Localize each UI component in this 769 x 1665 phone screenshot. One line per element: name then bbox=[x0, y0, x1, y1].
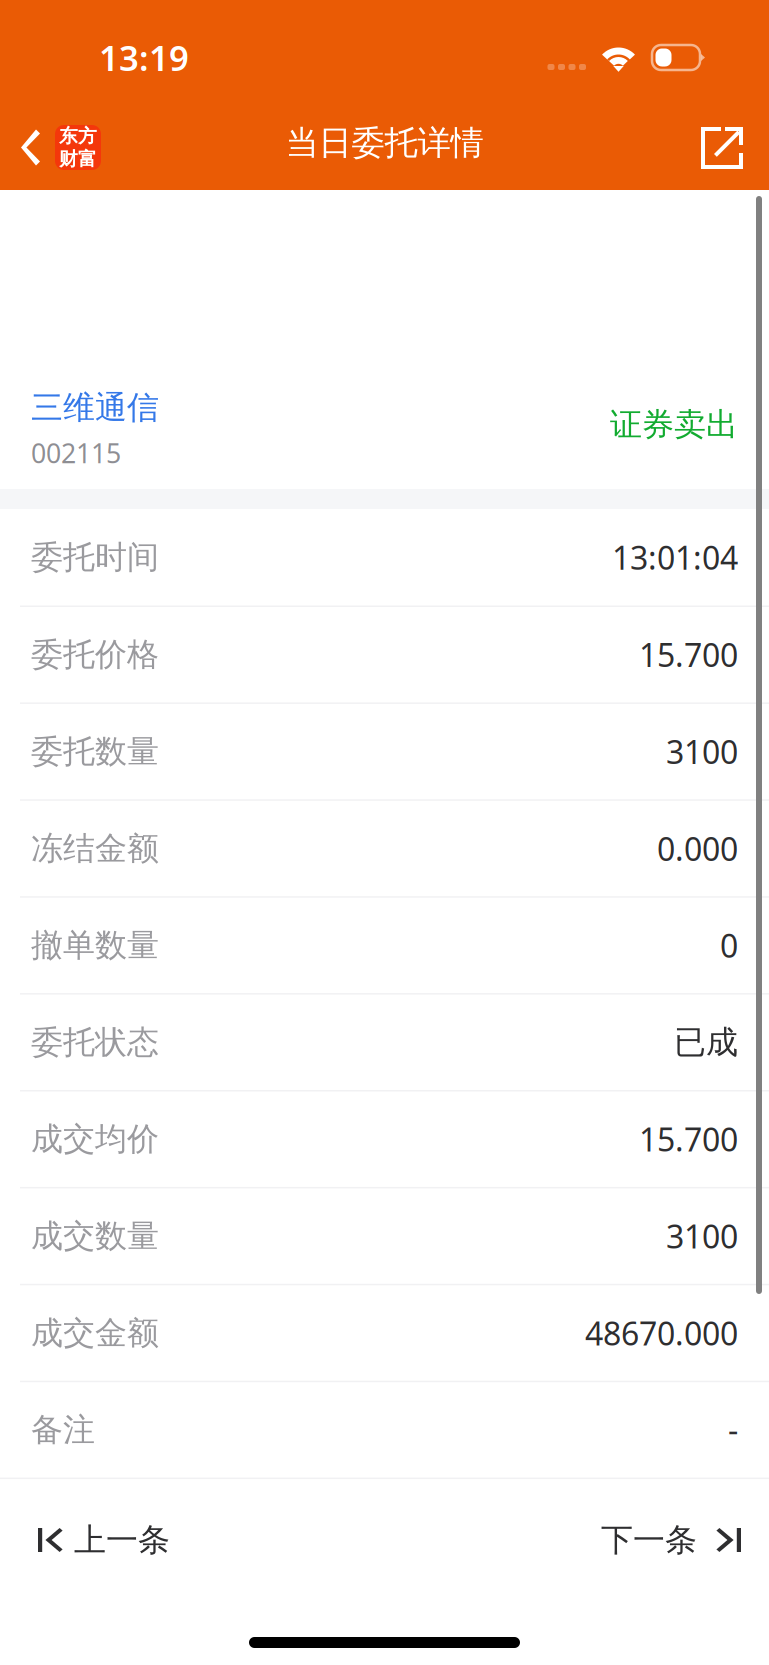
staticText: - bbox=[728, 1409, 738, 1451]
staticText: 委托状态 bbox=[31, 1023, 159, 1062]
staticText: 委托时间 bbox=[31, 538, 159, 577]
staticText: 13:01:04 bbox=[612, 536, 738, 578]
staticText: 48670.000 bbox=[585, 1312, 738, 1354]
staticText: 成交数量 bbox=[31, 1216, 159, 1256]
staticText: 13:19 bbox=[99, 34, 189, 80]
staticText: 证券卖出 bbox=[610, 405, 738, 444]
staticText: 已成 bbox=[674, 1023, 738, 1062]
staticText: 002115 bbox=[31, 435, 121, 471]
button[interactable]: Share bbox=[701, 96, 769, 190]
staticText: 当日委托详情 bbox=[285, 122, 483, 163]
staticText: 下一条 bbox=[601, 1520, 697, 1560]
button[interactable]: Back to 东方财富 bbox=[0, 96, 115, 190]
staticText: 三维通信 bbox=[31, 388, 159, 427]
staticText: 0 bbox=[720, 924, 738, 967]
staticText: 上一条 bbox=[74, 1520, 170, 1560]
staticText: 0.000 bbox=[657, 827, 738, 870]
staticText: 撤单数量 bbox=[31, 926, 159, 965]
button[interactable]: 上一条 bbox=[0, 1486, 190, 1594]
staticText: 3100 bbox=[666, 1215, 738, 1257]
staticText: 15.700 bbox=[639, 633, 738, 676]
button[interactable]: 下一条 bbox=[581, 1486, 769, 1594]
staticText: 委托价格 bbox=[31, 635, 159, 674]
staticText: 备注 bbox=[31, 1410, 95, 1449]
staticText: 委托数量 bbox=[31, 732, 159, 771]
staticText: 财富 bbox=[59, 147, 97, 170]
staticText: 东方 bbox=[59, 125, 97, 147]
staticText: 15.700 bbox=[639, 1118, 738, 1160]
staticText: 成交金额 bbox=[31, 1313, 159, 1353]
staticText: 成交均价 bbox=[31, 1119, 159, 1159]
staticText: 冻结金额 bbox=[31, 829, 159, 868]
staticText: 3100 bbox=[666, 730, 738, 773]
